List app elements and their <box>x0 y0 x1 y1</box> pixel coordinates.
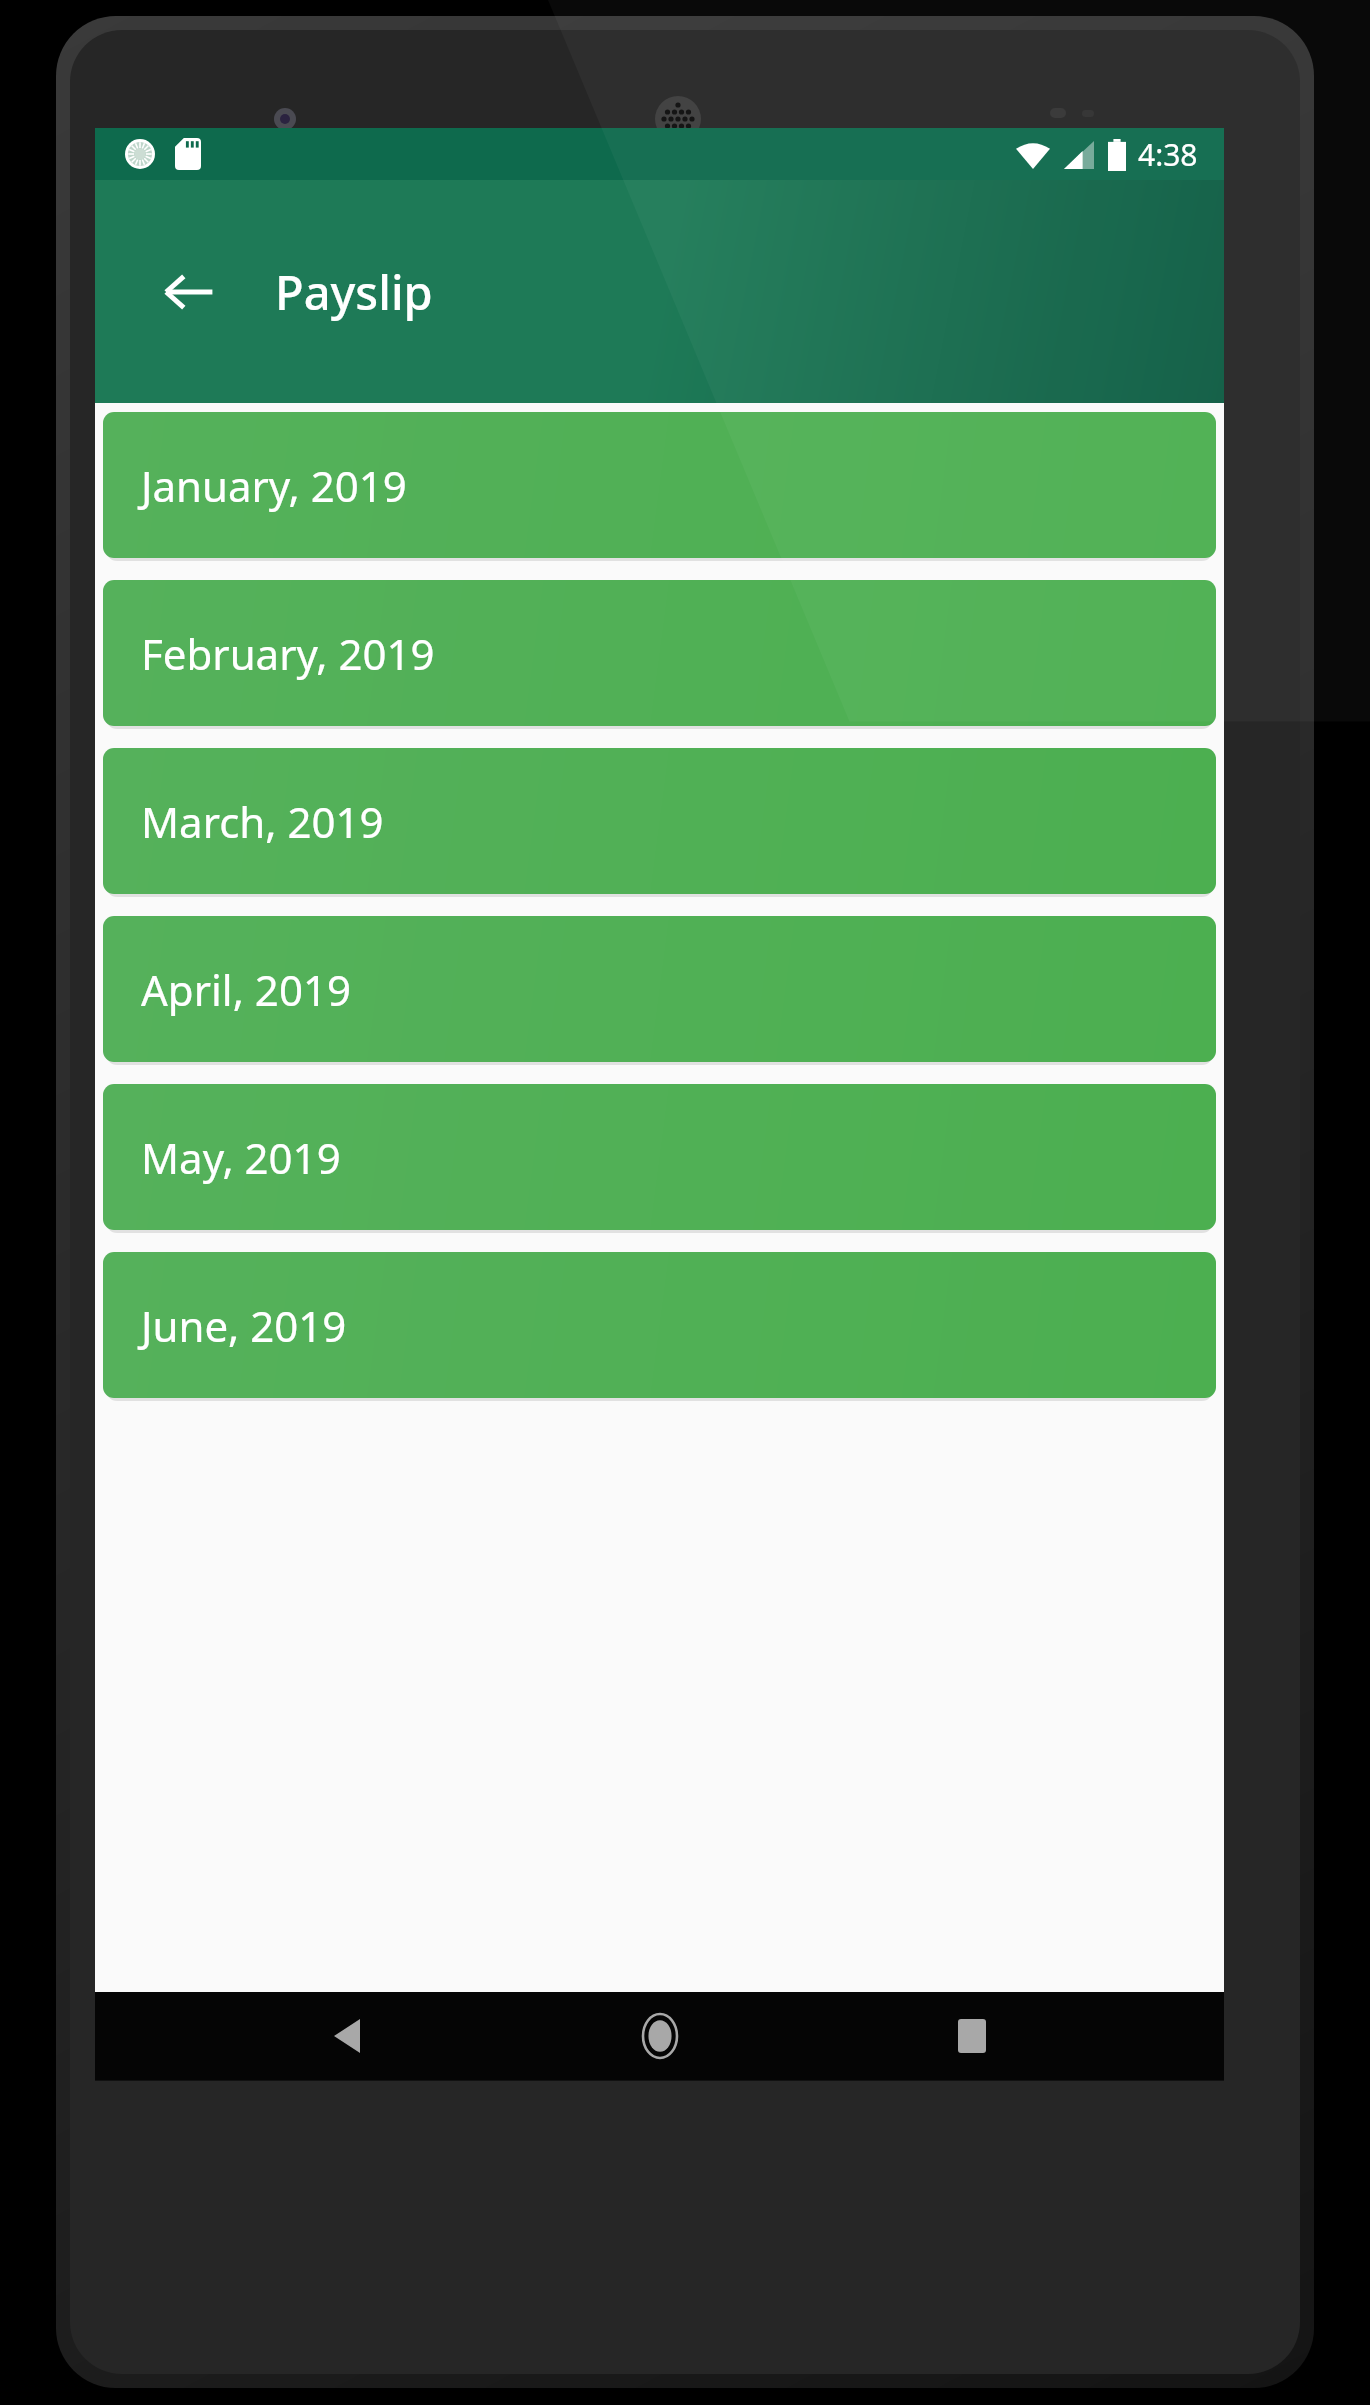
staticText: Payslip <box>275 260 433 324</box>
button[interactable]: June, 2019 <box>103 1252 1216 1398</box>
button[interactable]: May, 2019 <box>103 1084 1216 1230</box>
staticText: May, 2019 <box>141 1129 341 1186</box>
staticText: January, 2019 <box>141 457 407 514</box>
staticText: June, 2019 <box>141 1297 347 1354</box>
button[interactable]: Back <box>145 248 233 336</box>
button[interactable]: April, 2019 <box>103 916 1216 1062</box>
button[interactable]: January, 2019 <box>103 412 1216 558</box>
button[interactable]: Home <box>600 1992 720 2080</box>
staticText: 4:38 <box>1138 134 1198 175</box>
button[interactable]: March, 2019 <box>103 748 1216 894</box>
staticText: March, 2019 <box>141 793 384 850</box>
button[interactable]: Back <box>287 1992 407 2080</box>
staticText: February, 2019 <box>141 625 435 682</box>
staticText: April, 2019 <box>141 961 351 1018</box>
button[interactable]: Recent apps <box>912 1992 1032 2080</box>
button[interactable]: February, 2019 <box>103 580 1216 726</box>
